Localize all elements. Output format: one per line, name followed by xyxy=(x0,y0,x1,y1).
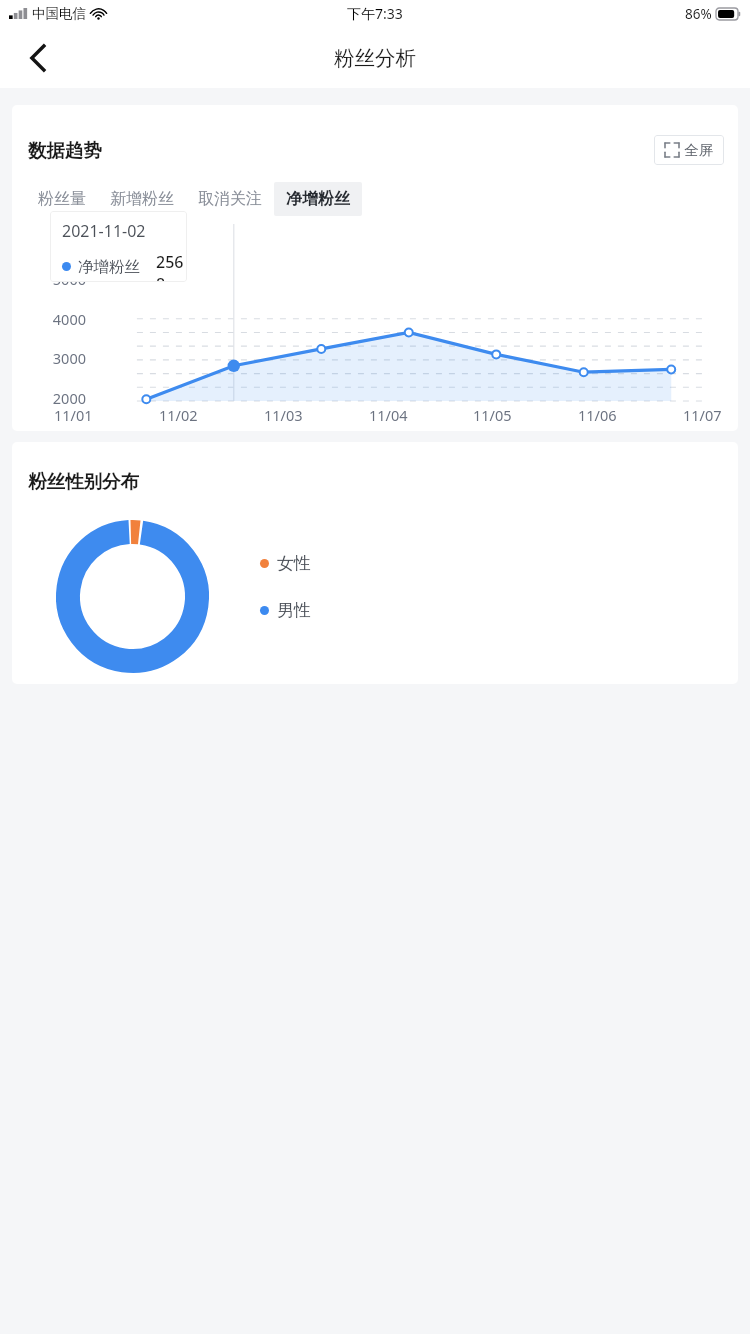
staticText: 全屏 xyxy=(684,141,713,159)
button[interactable]: 取消关注 xyxy=(186,182,274,216)
staticText: 男性 xyxy=(277,600,311,621)
staticText: 数据趋势 xyxy=(28,139,102,162)
staticText: 粉丝性别分布 xyxy=(28,470,139,493)
button[interactable]: 女性 xyxy=(260,553,311,574)
staticText: 下午7:33 xyxy=(347,4,403,23)
staticText: 11/02 xyxy=(159,405,198,425)
staticText: 2568 xyxy=(156,251,187,282)
staticText: 11/03 xyxy=(264,405,303,425)
staticText: 11/04 xyxy=(369,405,408,425)
staticText: 86% xyxy=(685,5,712,23)
button[interactable]: Back xyxy=(14,34,62,82)
button[interactable]: 新增粉丝 xyxy=(98,182,186,216)
staticText: 4000 xyxy=(22,309,86,329)
staticText: 2021-11-02 xyxy=(62,220,146,242)
button[interactable]: 全屏 xyxy=(654,135,724,165)
staticText: 6000 xyxy=(22,231,86,251)
staticText: 11/01 xyxy=(54,405,93,425)
staticText: 5000 xyxy=(22,269,86,289)
staticText: 净增粉丝 xyxy=(286,189,350,209)
staticText: 11/06 xyxy=(578,405,617,425)
staticText: 女性 xyxy=(277,553,311,574)
button[interactable]: 男性 xyxy=(260,600,311,621)
button[interactable]: 粉丝量 xyxy=(26,182,98,216)
staticText: 11/07 xyxy=(683,405,722,425)
staticText: 2000 xyxy=(22,388,86,408)
button[interactable]: 净增粉丝 xyxy=(274,182,362,216)
staticText: 中国电信 xyxy=(32,5,86,22)
staticText: 3000 xyxy=(22,348,86,368)
staticText: 取消关注 xyxy=(198,189,262,209)
staticText: 粉丝分析 xyxy=(334,45,416,71)
staticText: 11/05 xyxy=(473,405,512,425)
staticText: 粉丝量 xyxy=(38,189,86,209)
staticText: 净增粉丝 xyxy=(78,257,140,277)
staticText: 新增粉丝 xyxy=(110,189,174,209)
